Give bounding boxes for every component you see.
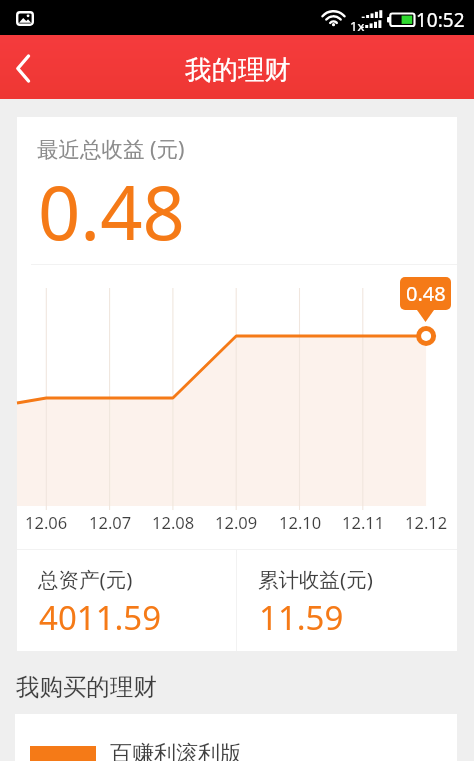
- staticText: 总资产(元): [38, 565, 133, 593]
- staticText: 12.08: [152, 511, 195, 533]
- staticText: 我购买的理财: [16, 672, 157, 702]
- staticText: 12.07: [89, 511, 132, 533]
- staticText: 12.11: [342, 511, 385, 533]
- staticText: 4011.59: [39, 595, 162, 640]
- button[interactable]: Back: [0, 35, 48, 99]
- staticText: 0.48: [38, 161, 185, 262]
- staticText: 最近总收益 (元): [37, 134, 185, 163]
- staticText: 12.06: [25, 511, 68, 533]
- staticText: 12.12: [405, 511, 448, 533]
- button[interactable]: 百赚利滚利版: [15, 714, 457, 761]
- staticText: 1x: [350, 17, 365, 35]
- staticText: 百赚利滚利版: [110, 740, 242, 761]
- staticText: 12.10: [279, 511, 322, 533]
- staticText: 累计收益(元): [258, 565, 373, 593]
- button[interactable]: 累计收益(元): [237, 550, 457, 651]
- button[interactable]: 总资产(元): [17, 550, 236, 651]
- staticText: 12.09: [215, 511, 258, 533]
- staticText: 我的理财: [185, 53, 291, 86]
- staticText: 10:52: [416, 7, 465, 33]
- staticText: 11.59: [259, 595, 344, 640]
- staticText: 0.48: [406, 280, 446, 307]
